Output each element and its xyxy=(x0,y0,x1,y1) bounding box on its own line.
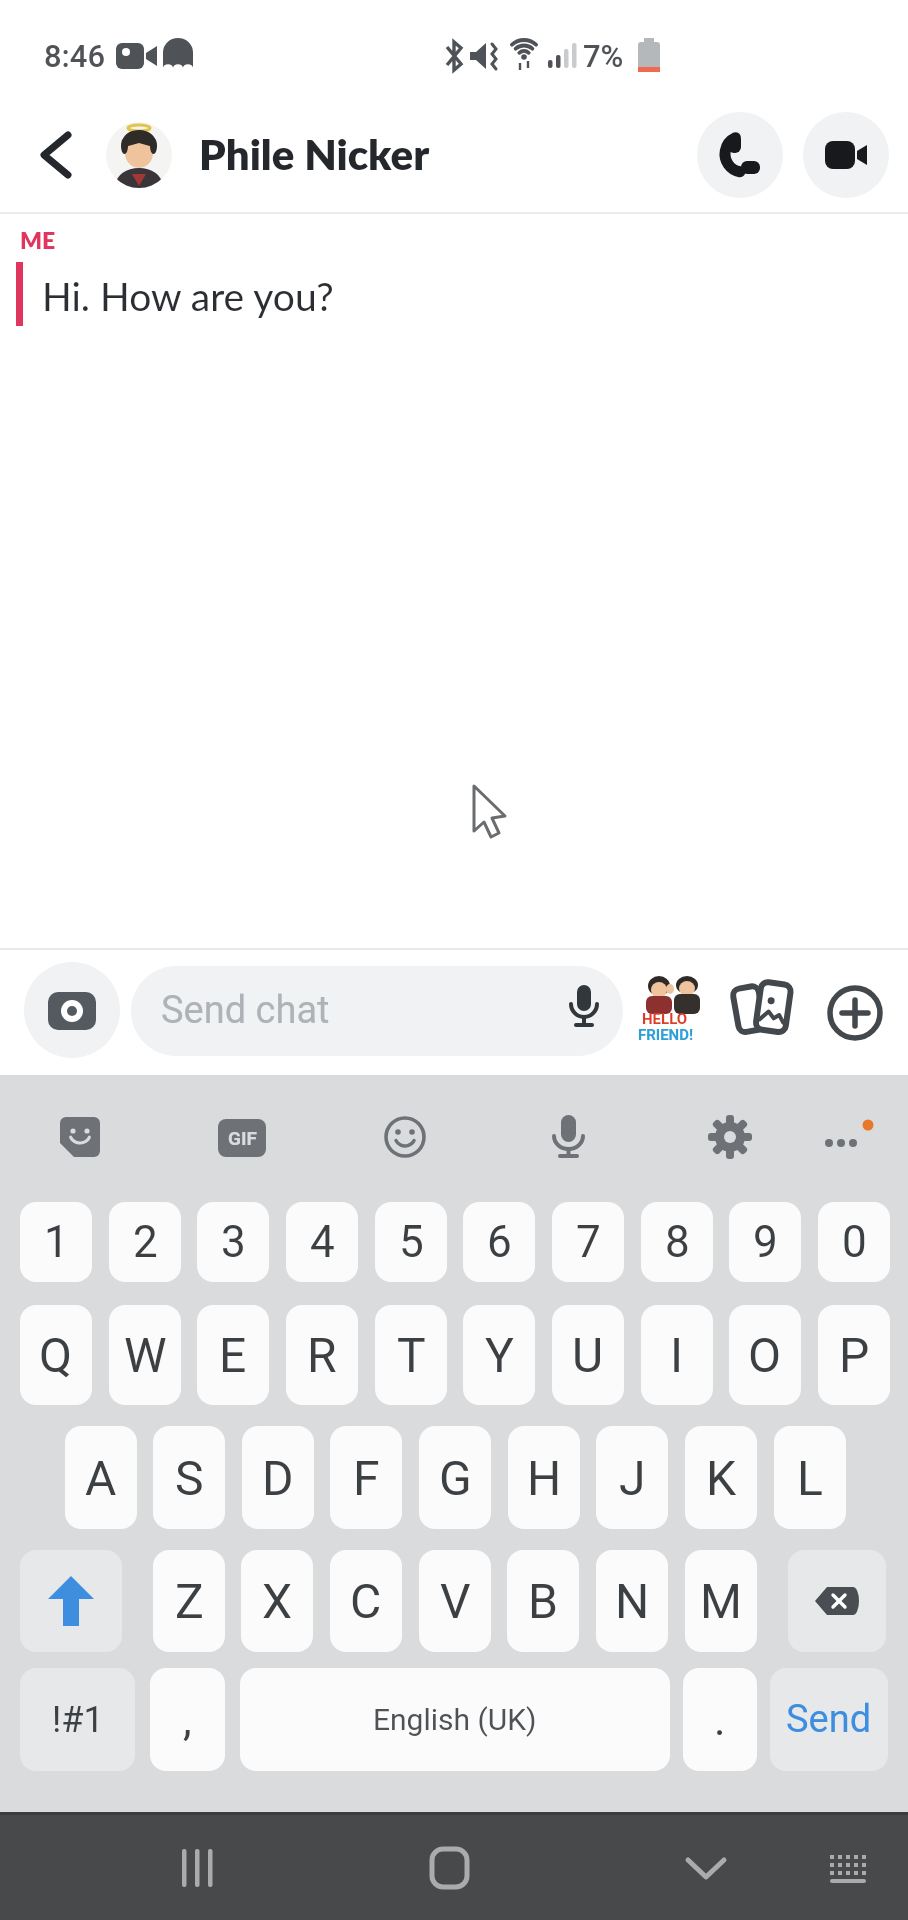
button[interactable]: C xyxy=(330,1550,402,1652)
staticText: T xyxy=(397,1327,426,1383)
button[interactable] xyxy=(20,1550,122,1652)
button[interactable]: GIF xyxy=(218,1119,266,1157)
button[interactable] xyxy=(697,112,783,198)
staticText: ME xyxy=(20,226,56,254)
button[interactable] xyxy=(414,1832,486,1904)
button[interactable]: R xyxy=(286,1305,358,1405)
button[interactable] xyxy=(24,962,120,1058)
button[interactable]: T xyxy=(375,1305,447,1405)
staticText: 1 xyxy=(44,1216,69,1268)
button[interactable]: J xyxy=(596,1426,668,1529)
button[interactable]: 9 xyxy=(729,1202,801,1282)
button[interactable]: S xyxy=(153,1426,225,1529)
button[interactable] xyxy=(240,1668,670,1771)
button[interactable] xyxy=(788,1550,886,1652)
button[interactable]: 8 xyxy=(641,1202,713,1282)
button[interactable]: !#1 xyxy=(20,1668,135,1771)
staticText: O xyxy=(748,1327,782,1383)
staticText: !#1 xyxy=(52,1699,104,1741)
button[interactable] xyxy=(732,981,794,1043)
button[interactable] xyxy=(106,122,172,188)
button[interactable]: 5 xyxy=(375,1202,447,1282)
staticText: I xyxy=(670,1327,684,1383)
button[interactable]: 4 xyxy=(286,1202,358,1282)
button[interactable]: 2 xyxy=(109,1202,181,1282)
staticText: E xyxy=(219,1327,247,1383)
button[interactable]: V xyxy=(419,1550,491,1652)
staticText: 9 xyxy=(753,1216,778,1268)
button[interactable]: N xyxy=(596,1550,668,1652)
staticText: 0 xyxy=(842,1216,867,1268)
staticText: D xyxy=(262,1450,294,1506)
button[interactable]: O xyxy=(729,1305,801,1405)
button[interactable] xyxy=(670,1832,742,1904)
button[interactable]: 0 xyxy=(818,1202,890,1282)
staticText: 4 xyxy=(310,1216,335,1268)
button[interactable]: I xyxy=(641,1305,713,1405)
button[interactable]: U xyxy=(552,1305,624,1405)
staticText: N xyxy=(615,1573,650,1629)
staticText: GIF xyxy=(228,1127,257,1149)
button[interactable]: Z xyxy=(153,1550,225,1652)
button[interactable]: , xyxy=(150,1668,225,1771)
button[interactable]: . xyxy=(683,1668,757,1771)
button[interactable]: B xyxy=(507,1550,579,1652)
staticText: S xyxy=(175,1450,204,1506)
button[interactable]: Q xyxy=(20,1305,92,1405)
button[interactable]: HELLO xyxy=(638,976,708,1046)
button[interactable]: A xyxy=(65,1426,137,1529)
button[interactable] xyxy=(56,1113,104,1161)
button[interactable]: 3 xyxy=(197,1202,269,1282)
button[interactable]: P xyxy=(818,1305,890,1405)
button[interactable]: K xyxy=(685,1426,757,1529)
button[interactable] xyxy=(820,1113,876,1169)
staticText: 8:46 xyxy=(44,38,106,74)
staticText: . xyxy=(714,1694,726,1746)
button[interactable] xyxy=(827,985,883,1041)
button[interactable]: E xyxy=(197,1305,269,1405)
staticText: G xyxy=(439,1450,472,1506)
staticText: P xyxy=(839,1327,870,1383)
button[interactable]: G xyxy=(419,1426,491,1529)
staticText: V xyxy=(440,1573,471,1629)
staticText: FRIEND! xyxy=(638,1026,694,1044)
button[interactable]: M xyxy=(685,1550,757,1652)
button[interactable]: X xyxy=(241,1550,313,1652)
button[interactable] xyxy=(803,112,889,198)
button[interactable]: Y xyxy=(463,1305,535,1405)
button[interactable]: 1 xyxy=(20,1202,92,1282)
staticText: 5 xyxy=(399,1216,424,1268)
staticText: , xyxy=(183,1694,192,1746)
staticText: K xyxy=(706,1450,737,1506)
button[interactable] xyxy=(545,1111,593,1159)
button[interactable]: F xyxy=(330,1426,402,1529)
staticText: 7 xyxy=(576,1216,601,1268)
button[interactable] xyxy=(28,125,88,185)
button[interactable]: D xyxy=(242,1426,314,1529)
button[interactable]: W xyxy=(109,1305,181,1405)
staticText: Send xyxy=(786,1697,872,1742)
button[interactable]: Send chat xyxy=(131,966,623,1056)
button[interactable]: L xyxy=(774,1426,846,1529)
staticText: 3 xyxy=(221,1216,246,1268)
button[interactable] xyxy=(160,1832,232,1904)
staticText: M xyxy=(700,1573,742,1629)
staticText: 8 xyxy=(665,1216,690,1268)
staticText: HELLO xyxy=(642,1010,688,1028)
button[interactable] xyxy=(381,1113,429,1161)
button[interactable]: 6 xyxy=(463,1202,535,1282)
button[interactable]: Send xyxy=(770,1668,888,1771)
staticText: J xyxy=(619,1450,646,1506)
staticText: C xyxy=(350,1573,382,1629)
staticText: X xyxy=(262,1573,293,1629)
button[interactable] xyxy=(812,1832,884,1904)
staticText: F xyxy=(353,1450,380,1506)
staticText: R xyxy=(307,1327,337,1383)
staticText: 7% xyxy=(583,38,624,74)
button[interactable] xyxy=(706,1113,754,1161)
staticText: A xyxy=(85,1450,117,1506)
button[interactable]: H xyxy=(508,1426,580,1529)
staticText: Hi. How are you? xyxy=(42,273,334,320)
staticText: W xyxy=(124,1327,167,1383)
button[interactable]: 7 xyxy=(552,1202,624,1282)
